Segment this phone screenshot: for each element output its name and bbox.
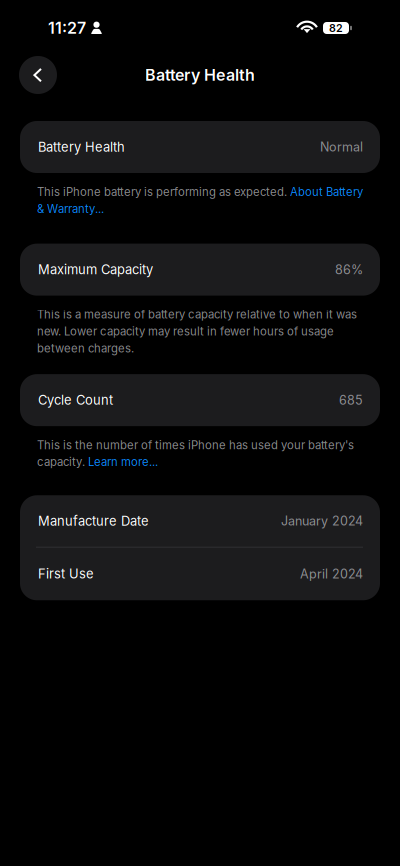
staticText: Cycle Count	[38, 392, 113, 408]
button[interactable]: First Use	[20, 547, 380, 600]
staticText: First Use	[38, 566, 94, 582]
staticText: Manufacture Date	[38, 513, 149, 529]
staticText: Battery Health	[38, 139, 125, 155]
button[interactable]: Maximum Capacity	[20, 244, 380, 296]
staticText: Normal	[320, 139, 363, 155]
staticText: 82	[329, 21, 343, 34]
button[interactable]: Cycle Count	[20, 374, 380, 426]
staticText: Battery Health	[145, 65, 255, 85]
staticText: April 2024	[300, 566, 363, 581]
button[interactable]: Manufacture Date	[20, 495, 380, 547]
button[interactable]: Battery Health	[20, 121, 380, 173]
staticText: 11:27	[48, 18, 86, 38]
staticText: This iPhone battery is performing as exp…	[37, 185, 363, 216]
staticText: Maximum Capacity	[38, 262, 153, 277]
staticText: 86%	[335, 262, 363, 277]
button[interactable]: Back	[19, 56, 57, 94]
staticText: 685	[339, 393, 363, 408]
staticText: This is the number of times iPhone has u…	[37, 438, 354, 469]
staticText: This is a measure of battery capacity re…	[37, 308, 357, 355]
staticText: January 2024	[281, 513, 363, 529]
